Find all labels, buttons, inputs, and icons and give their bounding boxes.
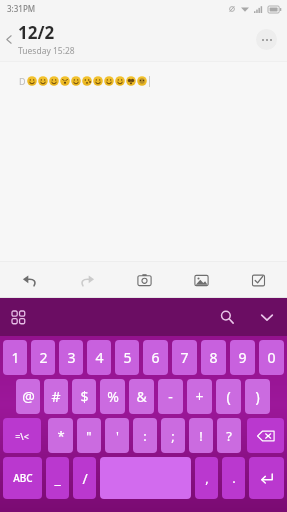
- staticText: ): [255, 387, 260, 406]
- staticText: @: [22, 387, 35, 406]
- staticText: ABC: [13, 471, 33, 485]
- button[interactable]: ?: [217, 418, 241, 453]
- staticText: ': [116, 427, 119, 445]
- staticText: ;: [171, 427, 175, 445]
- button[interactable]: $: [72, 379, 96, 414]
- staticText: _: [54, 469, 61, 488]
- button[interactable]: 9: [230, 340, 255, 375]
- button[interactable]: ,: [195, 457, 218, 499]
- button[interactable]: ": [77, 418, 101, 453]
- button[interactable]: ': [105, 418, 129, 453]
- button[interactable]: (: [216, 379, 241, 414]
- other: Backspace: [247, 418, 284, 453]
- button[interactable]: ;: [161, 418, 185, 453]
- other: Space: [100, 457, 191, 499]
- button[interactable]: Keyboard themes: [7, 306, 29, 328]
- button[interactable]: 2: [31, 340, 55, 375]
- staticText: 9: [238, 348, 247, 367]
- button[interactable]: 4: [87, 340, 111, 375]
- button[interactable]: Enter: [249, 457, 284, 499]
- button[interactable]: Insert image: [173, 262, 230, 298]
- staticText: ,: [205, 469, 209, 487]
- button[interactable]: Undo: [0, 262, 58, 298]
- staticText: :: [143, 427, 147, 445]
- button[interactable]: Search: [215, 305, 239, 329]
- button[interactable]: Hide keyboard: [255, 305, 279, 329]
- staticText: 7: [180, 348, 189, 367]
- staticText: 3: [67, 348, 76, 367]
- staticText: 5: [123, 348, 132, 367]
- button[interactable]: ): [245, 379, 270, 414]
- button[interactable]: !: [189, 418, 213, 453]
- button[interactable]: :: [133, 418, 157, 453]
- staticText: (: [226, 387, 231, 406]
- button[interactable]: 7: [172, 340, 197, 375]
- button[interactable]: *: [48, 418, 73, 453]
- staticText: !: [199, 427, 203, 445]
- staticText: #: [51, 387, 61, 406]
- staticText: 4: [95, 348, 104, 367]
- staticText: 2: [39, 348, 48, 367]
- button[interactable]: 6: [143, 340, 168, 375]
- button[interactable]: 5: [115, 340, 139, 375]
- other: Enter: [249, 457, 284, 499]
- button[interactable]: Back: [0, 19, 18, 59]
- button[interactable]: 1: [3, 340, 27, 375]
- staticText: $: [80, 387, 89, 406]
- staticText: Tuesday 15:28: [18, 45, 75, 57]
- button[interactable]: .: [222, 457, 245, 499]
- staticText: -: [168, 387, 173, 406]
- staticText: 6: [151, 348, 160, 367]
- staticText: 1: [11, 348, 20, 367]
- button[interactable]: +: [187, 379, 212, 414]
- button[interactable]: Backspace: [247, 418, 284, 453]
- staticText: *: [57, 427, 65, 445]
- button[interactable]: &: [129, 379, 154, 414]
- button[interactable]: ABC: [3, 457, 42, 499]
- button[interactable]: More options: [256, 29, 277, 50]
- button[interactable]: 8: [201, 340, 226, 375]
- button[interactable]: Camera: [116, 262, 173, 298]
- staticText: 3:31PM: [7, 3, 36, 14]
- staticText: ?: [226, 427, 232, 445]
- staticText: 8: [209, 348, 218, 367]
- button[interactable]: /: [73, 457, 96, 499]
- staticText: =\<: [15, 430, 29, 442]
- button[interactable]: Space: [100, 457, 191, 499]
- staticText: +: [195, 387, 204, 406]
- button[interactable]: 3: [59, 340, 83, 375]
- button[interactable]: %: [100, 379, 125, 414]
- staticText: /: [82, 469, 88, 488]
- button[interactable]: =\<: [3, 418, 41, 453]
- button[interactable]: #: [44, 379, 68, 414]
- button[interactable]: Redo: [58, 262, 116, 298]
- staticText: 0: [267, 348, 276, 367]
- button[interactable]: _: [46, 457, 69, 499]
- staticText: %: [107, 387, 119, 406]
- staticText: &: [136, 387, 147, 406]
- button[interactable]: -: [158, 379, 183, 414]
- button[interactable]: Checklist: [230, 262, 287, 298]
- staticText: 12/2: [18, 21, 55, 44]
- staticText: .: [232, 469, 236, 487]
- button[interactable]: @: [16, 379, 40, 414]
- staticText: D: [19, 75, 26, 87]
- button[interactable]: 0: [259, 340, 284, 375]
- staticText: ": [86, 427, 92, 445]
